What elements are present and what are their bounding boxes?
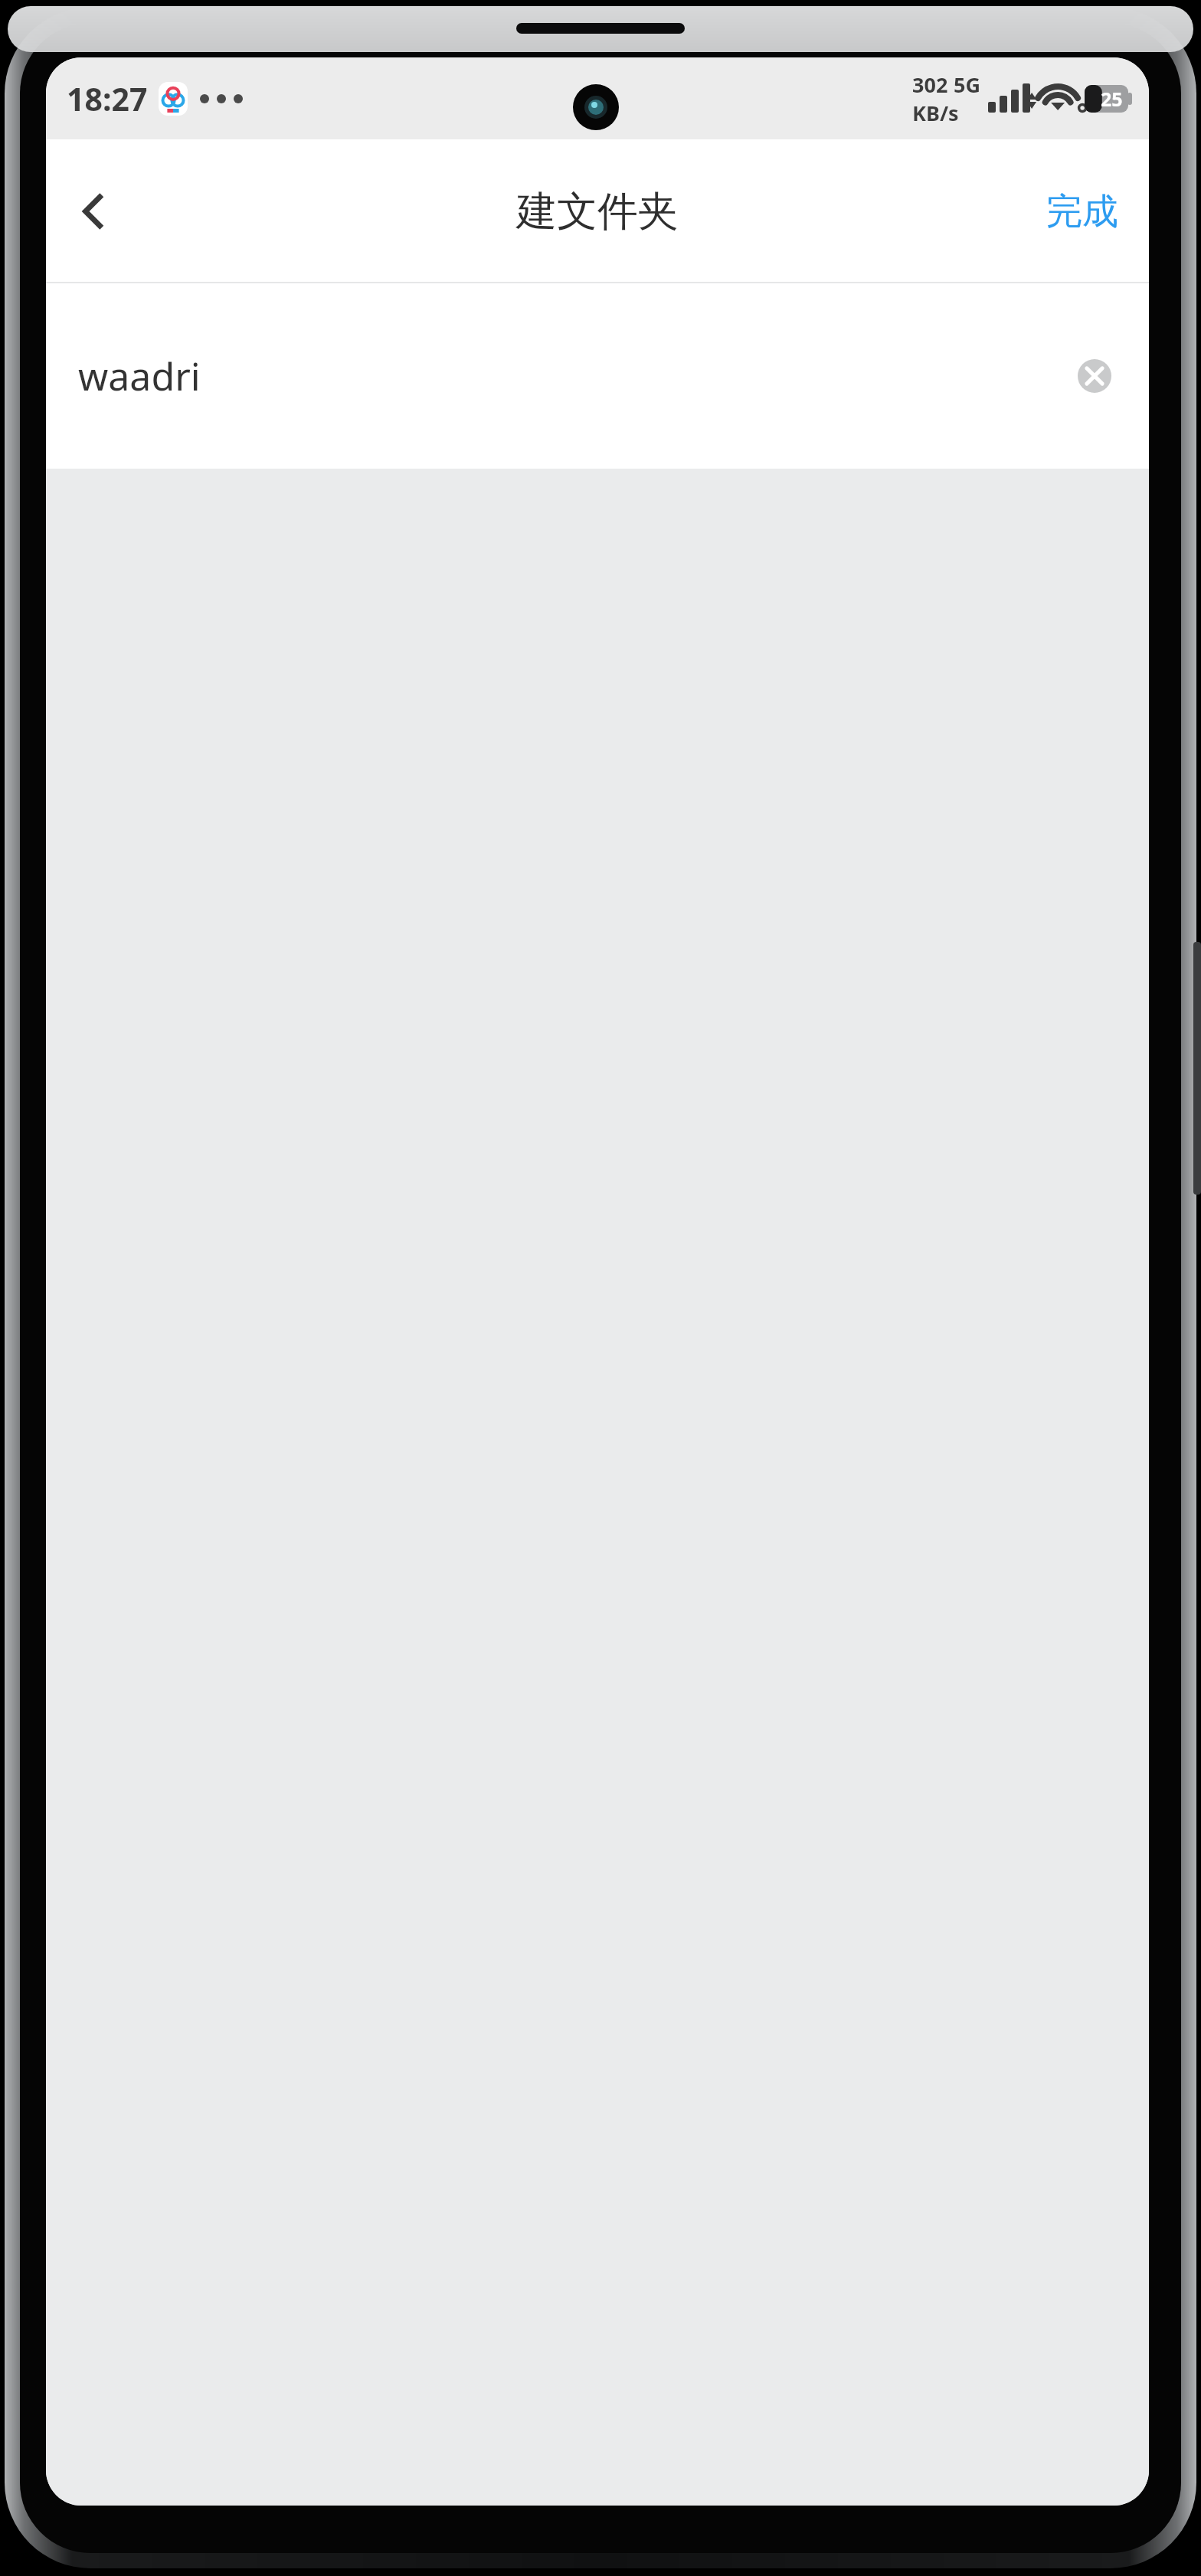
staticText: KB/s xyxy=(912,99,959,127)
staticText: 建文件夹 xyxy=(516,186,679,237)
button[interactable]: 完成 xyxy=(1016,139,1149,283)
staticText: 完成 xyxy=(1046,189,1118,234)
button[interactable]: waadri xyxy=(46,283,1149,469)
staticText: 5G xyxy=(954,70,980,99)
staticText: 18:27 xyxy=(67,77,148,120)
staticText: 25 xyxy=(1101,86,1123,112)
button[interactable]: Clear text xyxy=(1071,352,1118,400)
button[interactable]: Back xyxy=(46,139,141,283)
staticText: 302 xyxy=(912,70,948,99)
staticText: waadri xyxy=(78,350,201,402)
